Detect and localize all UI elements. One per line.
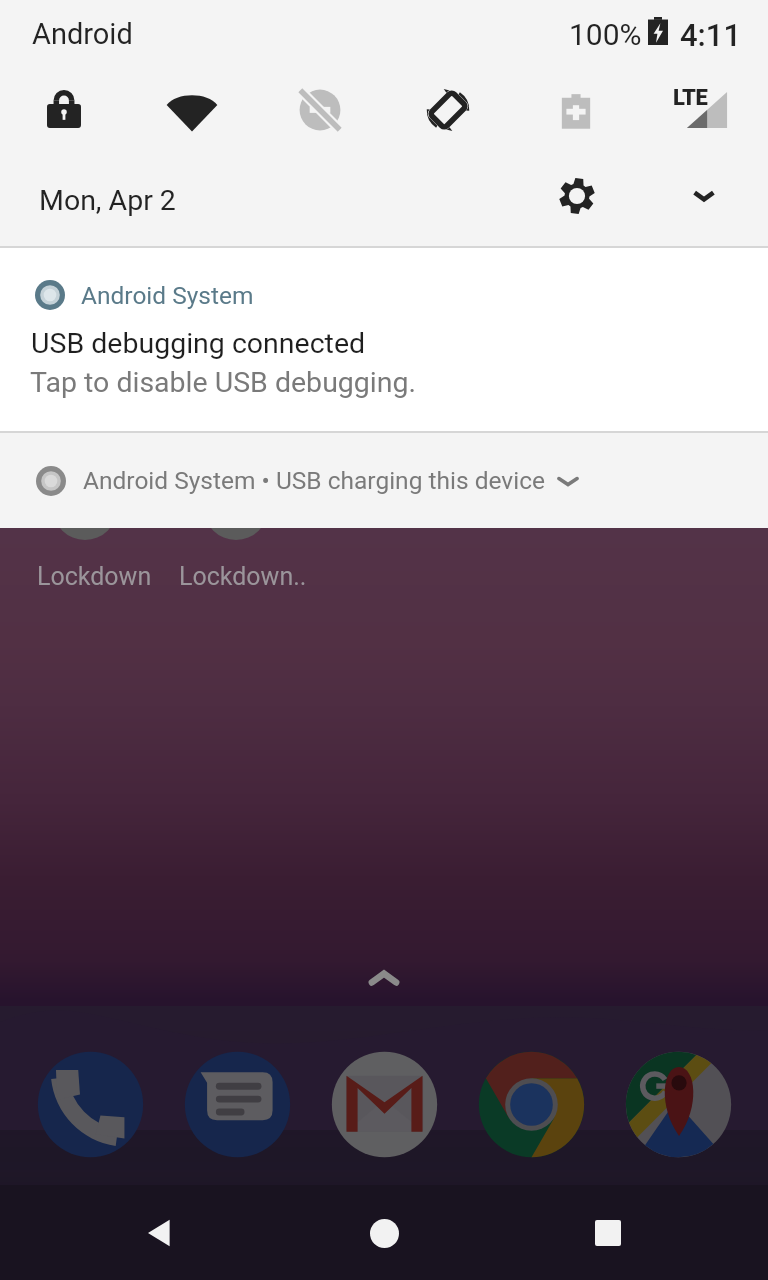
button[interactable]: Chrome xyxy=(473,1046,590,1163)
staticText: Lockdown.. xyxy=(179,562,307,591)
staticText: 100% xyxy=(569,17,642,52)
staticText: Android System • USB charging this devic… xyxy=(83,466,545,495)
button[interactable]: Gmail xyxy=(326,1046,443,1163)
button[interactable]: Lockdown xyxy=(53,476,117,540)
staticText: Android xyxy=(32,17,133,51)
staticText: 4:11 xyxy=(680,17,742,53)
button[interactable]: Maps xyxy=(620,1046,737,1163)
button[interactable]: Open app drawer xyxy=(354,948,414,1008)
button[interactable]: Battery saver xyxy=(534,68,618,152)
staticText: Lockdown xyxy=(37,562,152,591)
button[interactable]: Expand quick settings xyxy=(667,159,741,233)
button[interactable]: Wi-Fi xyxy=(150,68,234,152)
button[interactable]: Android System xyxy=(0,248,768,431)
button[interactable]: Do not disturb off xyxy=(278,68,362,152)
button[interactable]: Messages xyxy=(179,1046,296,1163)
staticText: Tap to disable USB debugging. xyxy=(30,366,417,399)
staticText: USB debugging connected xyxy=(31,327,366,360)
button[interactable]: Home xyxy=(344,1193,424,1273)
button[interactable]: Settings xyxy=(540,159,614,233)
button[interactable]: Recent apps xyxy=(568,1193,648,1273)
staticText: Android System xyxy=(81,281,254,310)
button[interactable]: Auto rotate xyxy=(406,68,490,152)
button[interactable]: Android System • USB charging this devic… xyxy=(0,433,768,528)
button[interactable]: LTE signal xyxy=(662,68,746,152)
staticText: LTE xyxy=(673,85,708,111)
button[interactable]: Back xyxy=(120,1193,200,1273)
button[interactable]: Phone xyxy=(32,1046,149,1163)
staticText: Mon, Apr 2 xyxy=(39,184,176,217)
button[interactable]: Screen lock xyxy=(22,68,106,152)
button[interactable]: Lockdown app xyxy=(204,476,268,540)
